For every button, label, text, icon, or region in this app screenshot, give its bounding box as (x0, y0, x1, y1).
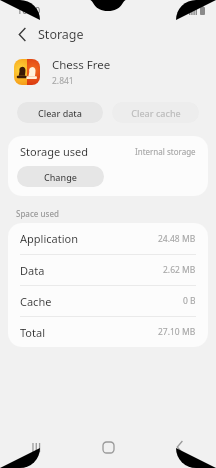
staticText: Clear cache (131, 107, 181, 119)
staticText: Internal storage (135, 146, 196, 157)
staticText: Clear data (38, 107, 82, 119)
staticText: Storage (38, 26, 84, 43)
staticText: Application (20, 231, 78, 246)
staticText: Chess Free (52, 57, 111, 73)
staticText: Change (44, 171, 77, 183)
button[interactable]: Data (8, 255, 208, 285)
staticText: Cache (20, 294, 52, 309)
staticText: 2.841 (52, 75, 74, 87)
staticText: Data (20, 263, 45, 278)
staticText: 24.48 MB (158, 233, 196, 245)
button[interactable]: Cache (8, 286, 208, 316)
staticText: Space used (16, 208, 59, 219)
button[interactable]: Back (144, 426, 216, 468)
staticText: 0 B (183, 295, 196, 307)
staticText: 2.62 MB (163, 264, 196, 276)
button[interactable]: Application (8, 223, 208, 254)
button[interactable]: Total (8, 317, 208, 347)
button[interactable]: Back (10, 22, 34, 46)
staticText: 10:00 (17, 4, 41, 16)
button[interactable]: Change (17, 166, 104, 187)
button[interactable]: Clear data (17, 102, 103, 123)
staticText: 27.10 MB (158, 326, 196, 338)
button[interactable]: Recents (0, 426, 72, 468)
button[interactable]: Clear cache (112, 102, 199, 123)
button[interactable]: Home (72, 426, 144, 468)
staticText: Storage used (20, 144, 89, 159)
staticText: Total (20, 325, 45, 340)
